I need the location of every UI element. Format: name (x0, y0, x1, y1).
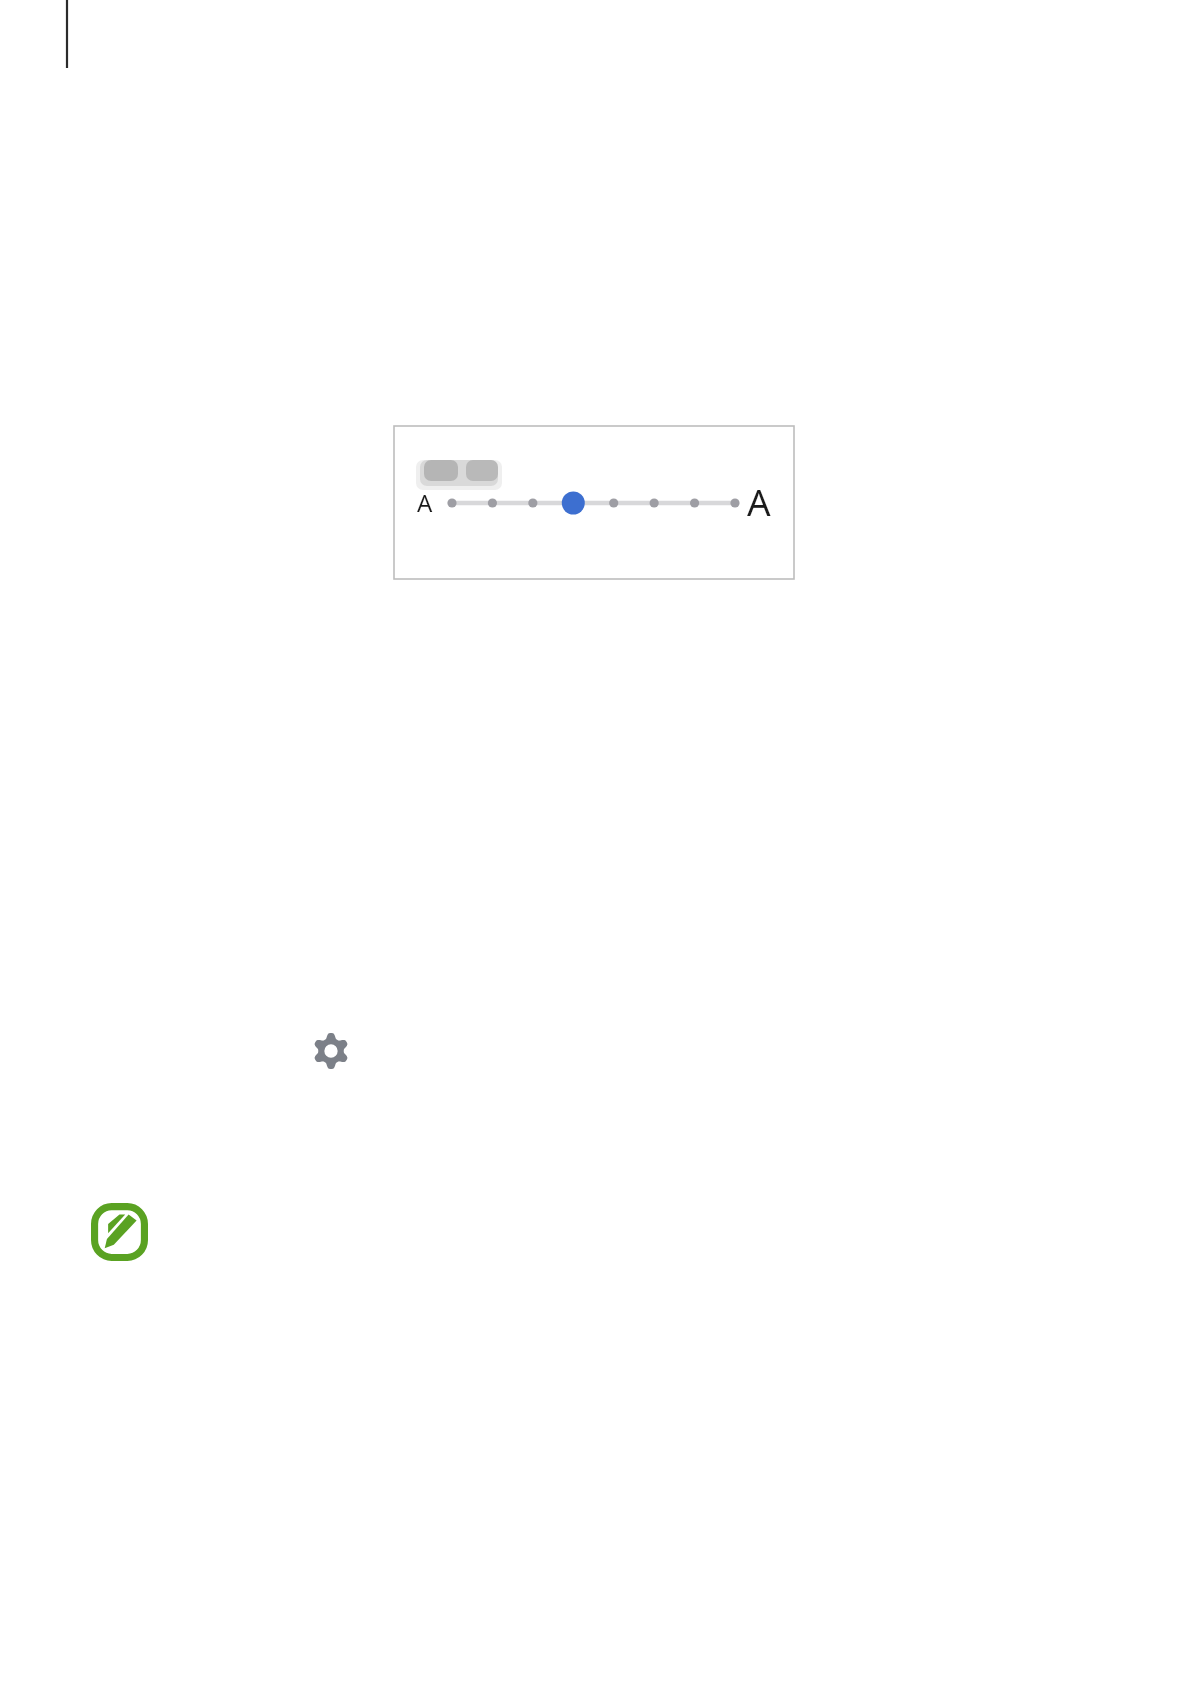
button[interactable]: Settings (313, 1033, 349, 1069)
button[interactable]: Samsung Notes (91, 1203, 148, 1261)
staticText: A (417, 486, 433, 519)
staticText: A (747, 476, 771, 526)
button[interactable]: A (394, 426, 794, 579)
